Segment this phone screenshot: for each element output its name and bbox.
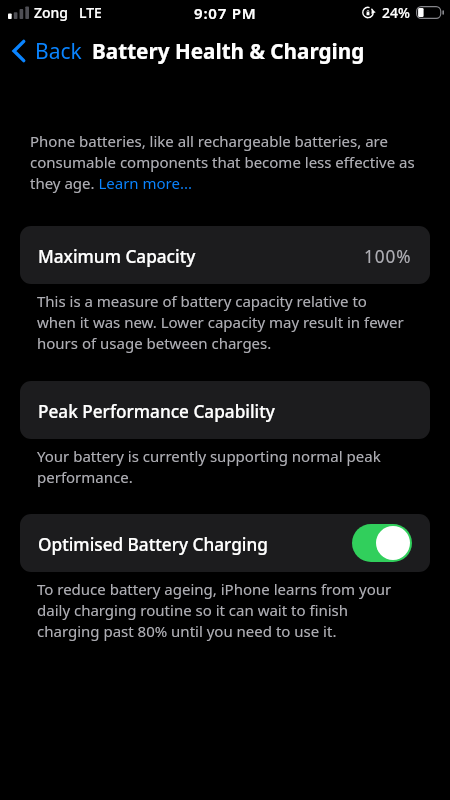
staticText: Maximum Capacity (38, 245, 196, 268)
staticText: Battery Health & Charging (92, 37, 365, 65)
button[interactable]: Optimised Battery Charging, on (352, 524, 412, 562)
button[interactable]: Maximum Capacity (20, 226, 430, 284)
staticText: Optimised Battery Charging (38, 533, 268, 556)
staticText: Zong (34, 3, 69, 22)
staticText: To reduce battery ageing, iPhone learns … (37, 579, 408, 642)
other: Battery 24 percent (416, 6, 444, 19)
other: Rotation lock (362, 6, 375, 19)
other: Cellular signal (8, 6, 29, 19)
staticText: This is a measure of battery capacity re… (37, 291, 408, 354)
button[interactable]: Peak Performance Capability (20, 381, 430, 439)
staticText: 100% (364, 245, 412, 268)
staticText: LTE (79, 3, 102, 22)
staticText: 24% (382, 3, 410, 22)
staticText: 9:07 PM (194, 3, 257, 23)
button[interactable]: Optimised Battery Charging (20, 514, 430, 572)
button[interactable]: Back (0, 28, 88, 74)
staticText: Phone batteries, like all rechargeable b… (30, 131, 428, 194)
staticText: Back (35, 37, 82, 66)
staticText: Peak Performance Capability (38, 400, 275, 423)
staticText: Your battery is currently supporting nor… (37, 446, 408, 488)
